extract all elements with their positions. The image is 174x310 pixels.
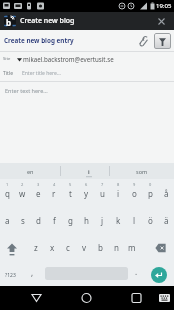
staticText: Enter title here... (22, 70, 61, 77)
button[interactable] (140, 233, 174, 260)
staticText: som (136, 168, 148, 175)
button[interactable]: 3 (30, 179, 46, 206)
button[interactable] (116, 286, 174, 310)
staticText: Title (3, 70, 13, 77)
staticText: f (53, 215, 56, 226)
staticText: 0 (149, 182, 152, 187)
staticText: . (135, 266, 138, 277)
button[interactable]: Title (0, 66, 174, 81)
button[interactable]: l (126, 206, 142, 233)
staticText: mikael.backstrom@evertusit.se (23, 55, 114, 63)
staticText: r (52, 188, 56, 199)
staticText: e (36, 188, 41, 199)
staticText: 3 (37, 182, 40, 187)
staticText: Create new blog (20, 16, 75, 26)
button[interactable]: 9 (126, 179, 142, 206)
staticText: i (88, 168, 90, 175)
button[interactable]: 2 (15, 179, 30, 206)
button[interactable] (144, 260, 174, 286)
button[interactable]: v (76, 233, 92, 260)
button[interactable]: i (61, 163, 109, 179)
staticText: t (69, 188, 72, 199)
staticText: a (5, 215, 10, 226)
button[interactable]: 4 (46, 179, 62, 206)
staticText: 6 (85, 182, 88, 187)
button[interactable]: c (60, 233, 76, 260)
staticText: 19:05 (156, 2, 172, 10)
staticText: Site (3, 56, 11, 62)
button[interactable]: s (15, 206, 30, 233)
staticText: 7 (101, 182, 104, 187)
staticText: i (117, 188, 120, 199)
staticText: x (50, 242, 55, 253)
staticText: ö (148, 215, 153, 226)
button[interactable]: b (92, 233, 108, 260)
button[interactable]: f (46, 206, 62, 233)
staticText: h (84, 215, 89, 226)
staticText: en (27, 168, 34, 175)
staticText: m (128, 242, 136, 253)
button[interactable] (58, 286, 116, 310)
staticText: 1 (6, 182, 9, 187)
button[interactable]: ä (158, 206, 174, 233)
button[interactable] (0, 233, 28, 260)
staticText: u (100, 188, 105, 199)
button[interactable]: , (20, 260, 45, 286)
staticText: 2 (21, 182, 24, 187)
button[interactable]: x (44, 233, 60, 260)
button[interactable]: a (0, 206, 15, 233)
button[interactable]: z (28, 233, 44, 260)
button[interactable]: k (110, 206, 126, 233)
staticText: Enter text here... (5, 87, 48, 94)
button[interactable]: m (124, 233, 140, 260)
staticText: c (66, 242, 70, 253)
button[interactable]: Enter text here... (0, 82, 174, 163)
button[interactable]: som (110, 163, 174, 179)
button[interactable]: j (94, 206, 110, 233)
staticText: w (19, 188, 26, 199)
staticText: 8 (117, 182, 120, 187)
button[interactable]: ?123 (0, 260, 20, 286)
button[interactable]: ö (142, 206, 158, 233)
staticText: k (116, 215, 121, 226)
staticText: ä (164, 215, 169, 226)
button[interactable]: h (78, 206, 94, 233)
staticText: å (164, 188, 169, 199)
button[interactable]: å (158, 179, 174, 206)
staticText: Create new blog entry (4, 36, 74, 45)
button[interactable]: 6 (78, 179, 94, 206)
staticText: y (84, 188, 89, 199)
staticText: b (6, 17, 12, 27)
staticText: b (98, 242, 103, 253)
button[interactable]: . (128, 260, 144, 286)
staticText: l (133, 215, 136, 226)
button[interactable]: 8 (110, 179, 126, 206)
button[interactable]: 1 (0, 179, 15, 206)
button[interactable] (0, 286, 58, 310)
button[interactable]: Site (0, 52, 174, 66)
staticText: n (114, 242, 119, 253)
staticText: , (31, 267, 34, 278)
button[interactable]: 5 (62, 179, 78, 206)
staticText: ?123 (5, 272, 16, 279)
staticText: d (36, 215, 41, 226)
staticText: q (5, 188, 10, 199)
button[interactable] (156, 16, 167, 27)
button[interactable]: 7 (94, 179, 110, 206)
staticText: z (34, 242, 38, 253)
button[interactable]: en (0, 163, 60, 179)
button[interactable]: n (108, 233, 124, 260)
staticText: g (68, 215, 73, 226)
button[interactable]: 0 (142, 179, 158, 206)
button[interactable] (137, 35, 149, 47)
button[interactable]: d (30, 206, 46, 233)
staticText: 9 (133, 182, 136, 187)
staticText: p (148, 188, 153, 199)
button[interactable]: g (62, 206, 78, 233)
staticText: v (82, 242, 87, 253)
staticText: 5 (69, 182, 72, 187)
button[interactable] (154, 33, 171, 49)
staticText: o (132, 188, 137, 199)
staticText: s (21, 215, 25, 226)
